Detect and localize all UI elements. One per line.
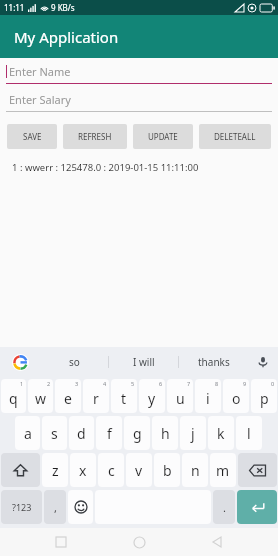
staticText: v [135, 461, 143, 480]
button[interactable]: v [126, 453, 152, 487]
staticText: 9 [243, 380, 247, 387]
button[interactable]: w [28, 379, 53, 413]
button[interactable]: m [210, 453, 236, 487]
staticText: 1 : wwerr : 125478.0 : 2019-01-15 11:11:… [12, 161, 199, 174]
staticText: ?123 [12, 501, 32, 513]
staticText: 8 [215, 380, 219, 387]
staticText: p [260, 389, 269, 408]
button[interactable]: Home [122, 528, 156, 556]
staticText: UPDATE [148, 131, 178, 142]
button[interactable]: I will [109, 347, 178, 377]
staticText: q [9, 389, 18, 408]
button[interactable]: o [223, 379, 249, 413]
button[interactable]: l [236, 416, 262, 450]
button[interactable]: s [42, 416, 67, 450]
button[interactable]: Back [200, 528, 234, 556]
staticText: 2 [47, 380, 51, 387]
staticText: t [121, 389, 127, 408]
button[interactable]: i [195, 379, 221, 413]
button[interactable]: t [111, 379, 137, 413]
button[interactable]: Backspace [238, 453, 277, 487]
staticText: 1 [20, 380, 24, 387]
staticText: o [232, 389, 241, 408]
staticText: 9 KB/s [51, 2, 75, 13]
button[interactable]: k [208, 416, 234, 450]
button[interactable]: d [69, 416, 94, 450]
staticText: , [54, 500, 57, 515]
button[interactable]: Emoji [68, 490, 93, 524]
staticText: a [24, 424, 32, 443]
button[interactable]: SAVE [7, 124, 57, 149]
staticText: l [247, 424, 251, 443]
staticText: 6 [159, 380, 163, 387]
button[interactable]: b [154, 453, 180, 487]
staticText: so [69, 355, 80, 369]
staticText: n [191, 461, 200, 480]
staticText: . [223, 500, 226, 515]
staticText: s [51, 424, 58, 443]
button[interactable]: c [98, 453, 124, 487]
button[interactable]: p [251, 379, 277, 413]
staticText: e [64, 389, 72, 408]
button[interactable]: f [96, 416, 122, 450]
staticText: My Application [14, 27, 119, 47]
button[interactable]: so [40, 347, 108, 377]
staticText: g [133, 424, 142, 443]
button[interactable]: Enter Name [6, 64, 272, 84]
staticText: 11:11 [4, 2, 25, 13]
staticText: f [107, 424, 112, 443]
staticText: x [79, 461, 87, 480]
staticText: thanks [198, 355, 230, 369]
button[interactable]: j [180, 416, 206, 450]
staticText: 0 [271, 380, 275, 387]
button[interactable]: REFRESH [63, 124, 127, 149]
button[interactable]: , [44, 490, 66, 524]
staticText: j [191, 424, 195, 443]
button[interactable]: e [55, 379, 81, 413]
button[interactable]: u [167, 379, 193, 413]
button[interactable]: Google [0, 347, 40, 377]
staticText: w [35, 389, 47, 408]
button[interactable]: Recent apps [44, 528, 78, 556]
button[interactable]: z [42, 453, 68, 487]
button[interactable]: Enter Salary [6, 92, 272, 112]
button[interactable]: y [139, 379, 165, 413]
staticText: r [93, 389, 99, 408]
button[interactable]: g [124, 416, 150, 450]
staticText: 5 [131, 380, 135, 387]
staticText: c [108, 461, 115, 480]
staticText: 7 [187, 380, 191, 387]
button[interactable]: h [152, 416, 178, 450]
staticText: m [216, 461, 230, 480]
staticText: 3 [75, 380, 79, 387]
button[interactable]: . [213, 490, 235, 524]
button[interactable]: q [1, 379, 26, 413]
button[interactable]: r [83, 379, 109, 413]
staticText: Enter Name [9, 64, 71, 79]
button[interactable]: 1 : wwerr : 125478.0 : 2019-01-15 11:11:… [12, 161, 278, 174]
button[interactable]: Voice input [248, 347, 278, 377]
staticText: u [176, 389, 185, 408]
button[interactable]: ?123 [1, 490, 42, 524]
button[interactable]: Enter [237, 490, 277, 524]
staticText: DELETEALL [214, 131, 256, 142]
staticText: I will [133, 355, 155, 369]
button[interactable]: a [15, 416, 40, 450]
staticText: h [161, 424, 170, 443]
staticText: i [206, 389, 210, 408]
button[interactable]: Shift [1, 453, 40, 487]
staticText: SAVE [23, 131, 42, 142]
button[interactable]: UPDATE [133, 124, 193, 149]
staticText: k [217, 424, 225, 443]
staticText: REFRESH [78, 131, 112, 142]
button[interactable]: x [70, 453, 96, 487]
staticText: 4 [103, 380, 107, 387]
staticText: d [77, 424, 86, 443]
button[interactable]: DELETEALL [199, 124, 271, 149]
staticText: Enter Salary [9, 92, 71, 107]
staticText: b [163, 461, 172, 480]
button[interactable]: thanks [179, 347, 248, 377]
staticText: z [52, 461, 59, 480]
button[interactable]: n [182, 453, 208, 487]
